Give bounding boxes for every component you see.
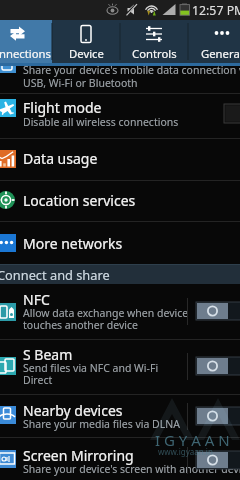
staticText: Screen Mirroring (23, 446, 134, 465)
staticText: NFC (23, 290, 50, 309)
staticText: Connections (0, 46, 51, 61)
button[interactable]: Toggle (196, 357, 240, 375)
staticText: Share your device's mobile data connecti… (23, 63, 240, 77)
button[interactable]: Toggle (196, 407, 240, 425)
button[interactable] (0, 20, 52, 63)
staticText: Connect and share (0, 266, 110, 283)
staticText: Data usage (23, 149, 98, 168)
button[interactable]: Nearby devices (0, 395, 240, 438)
button[interactable]: Share your device's mobile data connecti… (0, 50, 240, 93)
button[interactable]: Screen Mirroring (0, 438, 240, 480)
staticText: Share your device's screen with another … (23, 462, 240, 476)
button[interactable]: S Beam (0, 339, 240, 395)
staticText: S Beam (23, 345, 73, 364)
staticText: touches another device (23, 318, 139, 332)
staticText: I G Y A A N (155, 430, 230, 450)
staticText: Allow data exchange when device (23, 306, 189, 320)
button[interactable]: Connections (0, 20, 52, 63)
button[interactable]: Flight mode (0, 94, 240, 138)
staticText: Share your media files via DLNA (23, 417, 180, 431)
staticText: General (201, 46, 240, 61)
staticText: Disable all wireless connections (23, 115, 179, 129)
staticText: Flight mode (23, 98, 102, 117)
button[interactable]: Data usage (0, 138, 240, 180)
button[interactable]: General (188, 20, 240, 63)
staticText: Device (69, 46, 104, 61)
staticText: Controls (132, 46, 177, 61)
staticText: Direct (23, 373, 53, 387)
button[interactable]: Device (52, 20, 120, 63)
button[interactable]: Toggle (196, 302, 240, 320)
staticText: www.igyaan.in (158, 446, 213, 457)
staticText: Nearby devices (23, 401, 123, 420)
staticText: Send files via NFC and Wi-Fi (23, 361, 159, 375)
staticText: More networks (23, 234, 123, 253)
button[interactable]: More networks (0, 221, 240, 264)
staticText: 12:57 PM (192, 2, 240, 19)
button[interactable]: Controls (120, 20, 188, 63)
staticText: USB, Wi-Fi or Bluetooth (23, 76, 138, 90)
button[interactable]: Toggle (224, 104, 240, 123)
button[interactable]: NFC (0, 284, 240, 339)
button[interactable]: Location services (0, 180, 240, 221)
button[interactable]: Toggle (196, 451, 240, 469)
staticText: Location services (23, 191, 136, 210)
